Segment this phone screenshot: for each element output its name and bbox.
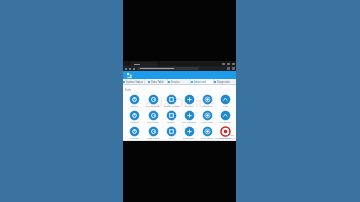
staticText: Backup Config	[164, 105, 179, 108]
staticText: Restore	[185, 105, 193, 108]
other: Scan Device	[203, 127, 212, 136]
button[interactable]: Update	[162, 109, 180, 125]
button[interactable]: Firmware	[198, 93, 216, 109]
button[interactable]: Network	[125, 109, 144, 125]
button[interactable]: Advanced Setting	[191, 79, 213, 85]
button[interactable]: Service Settings	[168, 79, 190, 85]
staticText: Factory Reset	[146, 105, 160, 108]
button[interactable]: File Export	[216, 109, 234, 125]
other: Trace Route	[149, 127, 158, 136]
button[interactable]: Ping Test	[125, 125, 144, 141]
button[interactable]: Factory Reset	[144, 93, 162, 109]
other: Ping Test	[130, 127, 139, 136]
other: Connection	[149, 111, 158, 120]
button[interactable]	[137, 67, 199, 70]
button[interactable]: Connection	[144, 109, 162, 125]
staticText: Diagnostic Tools	[217, 80, 236, 84]
staticText: Tools	[125, 88, 132, 92]
staticText: Logs	[223, 105, 228, 108]
staticText: Service Settings	[171, 80, 190, 84]
staticText: Shutdown	[220, 137, 231, 140]
button[interactable]: Shutdown	[216, 125, 234, 141]
other: Factory Reset	[149, 95, 158, 104]
staticText: Ping Test	[130, 137, 140, 140]
button[interactable]: Backup Config	[162, 93, 180, 109]
other: Restore	[185, 95, 194, 104]
button[interactable]: Diagnostic Tools	[214, 79, 236, 85]
staticText: Connection	[147, 121, 159, 124]
staticText: Network	[130, 121, 139, 124]
other: Logs	[221, 95, 230, 104]
staticText: Bandwidth	[183, 137, 195, 140]
other: File Export	[221, 111, 230, 120]
button[interactable]	[131, 62, 157, 66]
other: Backup Config	[167, 95, 176, 104]
other: Shutdown	[221, 127, 230, 136]
staticText: Update	[167, 121, 175, 124]
staticText: System Status	[126, 80, 144, 84]
button[interactable]: Logo	[126, 72, 133, 79]
button[interactable]: DNS	[162, 125, 180, 141]
staticText: File Export	[220, 121, 231, 124]
staticText: Reboot	[131, 105, 139, 108]
other: Reboot	[130, 95, 139, 104]
staticText: Advanced Setting	[194, 80, 213, 84]
staticText: Scan Device	[201, 137, 214, 140]
button[interactable]: Reboot	[125, 93, 144, 109]
other: Bandwidth	[185, 127, 194, 136]
button[interactable]: System Status	[123, 79, 144, 85]
staticText: User Access	[201, 121, 214, 124]
other: User Access	[203, 111, 212, 120]
other: DNS	[167, 127, 176, 136]
staticText: Trace Route	[147, 137, 160, 140]
other: Update	[167, 111, 176, 120]
button[interactable]: Scan Device	[198, 125, 216, 141]
button[interactable]: Bandwidth	[180, 125, 198, 141]
staticText: DNS	[169, 137, 174, 140]
button[interactable]: User Access	[198, 109, 216, 125]
button[interactable]: Port Mapping	[180, 109, 198, 125]
button[interactable]: Trace Route	[144, 125, 162, 141]
staticText: Firmware	[202, 105, 212, 108]
other: Network	[130, 111, 139, 120]
staticText: Copyright	[224, 134, 235, 137]
button[interactable]: Restore	[180, 93, 198, 109]
other: Firmware	[203, 95, 212, 104]
staticText: Asia Online	[145, 93, 214, 111]
staticText: Data Table	[151, 80, 164, 84]
staticText: Port Mapping	[182, 121, 197, 124]
button[interactable]: Data Table	[145, 79, 167, 85]
other: Port Mapping	[185, 111, 194, 120]
button[interactable]: Logs	[216, 93, 234, 109]
staticText: Reserved All rights	[215, 137, 235, 140]
